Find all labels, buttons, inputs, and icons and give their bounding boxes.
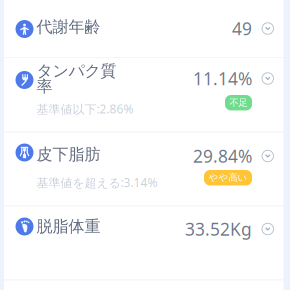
button[interactable]: 脱脂体重 [4, 206, 283, 279]
staticText: 33.52Kg [185, 217, 252, 240]
staticText: 11.14% [193, 67, 252, 90]
staticText: 不足 [229, 97, 247, 108]
staticText: やや高い [208, 172, 247, 183]
button[interactable]: 皮下脂肪 [4, 132, 283, 205]
staticText: 代謝年齢 [36, 17, 100, 37]
staticText: 皮下脂肪 [36, 144, 100, 164]
staticText: 基準値を超える:3.14% [36, 174, 157, 190]
staticText: 49 [232, 17, 252, 40]
button[interactable]: 代謝年齢 [4, 0, 283, 57]
staticText: 29.84% [193, 144, 252, 167]
staticText: 率 [36, 76, 52, 96]
staticText: タンパク質 [36, 61, 116, 81]
staticText: 脱脂体重 [36, 216, 100, 236]
button[interactable]: タンパク質 [4, 58, 283, 131]
staticText: 基準値以下:2.86% [36, 101, 133, 117]
